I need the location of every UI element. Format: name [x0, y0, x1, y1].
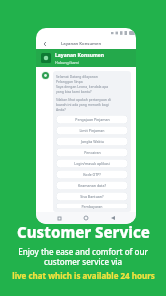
button[interactable]: Kode OTP? — [56, 170, 128, 179]
staticText: Kode OTP? — [83, 172, 101, 177]
staticText: Customer Service — [17, 222, 150, 242]
staticText: Sisa Bantuan? — [80, 194, 104, 199]
button[interactable]: Login/masuk aplikasi — [56, 159, 128, 168]
button[interactable]: Pengajuan Pinjaman — [56, 115, 128, 124]
button[interactable]: Jangka Waktu — [56, 137, 128, 146]
button[interactable]: Sisa Bantuan? — [56, 192, 128, 201]
staticText: Pencairan — [84, 150, 101, 155]
staticText: Limit Pinjaman — [79, 128, 105, 133]
staticText: Enjoy the ease and comfort of our custom… — [18, 246, 148, 267]
staticText: Layanan Konsumen — [61, 41, 102, 47]
button[interactable]: Back — [109, 214, 117, 222]
staticText: Layanan Konsumen — [55, 52, 105, 59]
button[interactable]: Pembayaran — [56, 203, 128, 209]
staticText: live chat which is available 24 hours — [12, 270, 155, 281]
button[interactable]: Keamanan data? — [56, 181, 128, 190]
staticText: Hubungi kami — [55, 60, 79, 65]
button[interactable]: Layanan Konsumen — [36, 49, 136, 67]
staticText: Pembayaran — [81, 204, 103, 209]
button[interactable]: Back — [41, 40, 48, 47]
staticText: Pengajuan Pinjaman — [75, 117, 110, 122]
button[interactable]: Limit Pinjaman — [56, 126, 128, 135]
button[interactable]: Pencairan — [56, 148, 128, 157]
staticText: Login/masuk aplikasi — [74, 161, 110, 166]
button[interactable]: Home — [82, 214, 90, 222]
staticText: Keamanan data? — [78, 183, 106, 188]
staticText: Jangka Waktu — [81, 139, 104, 144]
button[interactable]: Recent apps — [55, 214, 63, 222]
staticText: Selamat Datang dilayanan Pelanggan Sinpa… — [56, 74, 109, 94]
staticText: Silakan lihat apakah pertanyaan di bawah… — [56, 97, 111, 112]
